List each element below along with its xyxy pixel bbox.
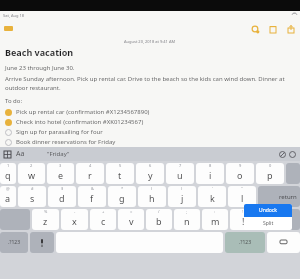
button[interactable]: / (146, 209, 172, 230)
staticText: 8 (209, 163, 212, 168)
staticText: 1 (7, 163, 10, 168)
button[interactable]: return (258, 186, 300, 207)
button[interactable]: "Friday" (47, 150, 70, 158)
button[interactable]: Share (285, 23, 296, 34)
staticText: Beach vacation (5, 46, 74, 58)
button[interactable]: Sign up for parasailing for four (5, 128, 295, 136)
button[interactable]: Table (4, 151, 11, 158)
button[interactable]: Pick up rental car (confirmation #X12345… (5, 108, 295, 116)
staticText: % (44, 209, 48, 214)
button[interactable]: Split (244, 217, 292, 230)
staticText: Sat, Aug 18 (3, 13, 25, 18)
staticText: k (210, 192, 215, 204)
staticText: h (149, 192, 155, 204)
button[interactable]: 8 (196, 163, 224, 184)
staticText: 3 (59, 163, 62, 168)
button[interactable]: & (78, 186, 106, 207)
button[interactable]: Backspace (286, 163, 300, 184)
button[interactable]: ' (198, 186, 226, 207)
staticText: 6 (149, 163, 152, 168)
button[interactable]: @ (0, 186, 16, 207)
button[interactable]: Checklist (249, 23, 260, 34)
button[interactable]: ! (230, 209, 256, 230)
staticText: j (181, 192, 184, 204)
staticText: 7 (179, 163, 182, 168)
staticText: f (90, 192, 94, 204)
staticText: $ (61, 186, 64, 191)
staticText: = (130, 209, 133, 214)
button[interactable]: - (61, 209, 88, 230)
button[interactable]: * (108, 186, 136, 207)
staticText: r (88, 169, 92, 181)
staticText: Sign up for parasailing for four (16, 128, 103, 136)
button[interactable]: 9 (226, 163, 254, 184)
button[interactable]: Shift (258, 209, 300, 230)
staticText: a (5, 192, 11, 204)
staticText: x (72, 215, 77, 227)
staticText: m (211, 215, 220, 227)
staticText: Check into hotel (confirmation #XK012345… (16, 118, 144, 126)
staticText: w (28, 169, 36, 181)
button[interactable]: 3 (47, 163, 74, 184)
staticText: q (5, 169, 11, 181)
staticText: / (158, 209, 160, 214)
staticText: e (58, 169, 64, 181)
button[interactable]: 4 (76, 163, 104, 184)
staticText: s (30, 192, 35, 204)
button[interactable]: Back to Notes (4, 26, 13, 31)
staticText: ; (186, 209, 188, 214)
button[interactable]: Undo (279, 151, 286, 158)
button[interactable]: Hide keyboard (267, 232, 300, 253)
staticText: y (148, 169, 153, 181)
staticText: t (118, 169, 122, 181)
button[interactable]: More options (289, 151, 296, 158)
staticText: Arrive Sunday afternoon. Pick up rental … (5, 75, 295, 92)
staticText: To do: (5, 97, 23, 105)
staticText: .?123 (239, 239, 252, 246)
button[interactable]: .?123 (225, 232, 265, 253)
button[interactable]: Aa (16, 149, 25, 159)
button[interactable]: 1 (0, 163, 16, 184)
button[interactable]: " (228, 186, 256, 207)
staticText: 0 (269, 163, 272, 168)
button[interactable]: ( (138, 186, 166, 207)
staticText: # (31, 186, 34, 191)
button[interactable]: = (118, 209, 144, 230)
button[interactable]: Delete (267, 23, 278, 34)
button[interactable]: Dictation (30, 232, 54, 253)
button[interactable]: $ (48, 186, 76, 207)
staticText: August 20, 2018 at 9:41 AM (124, 39, 176, 44)
staticText: & (91, 186, 94, 191)
staticText: * (121, 186, 124, 191)
button[interactable]: 6 (136, 163, 164, 184)
button[interactable]: 0 (256, 163, 284, 184)
button[interactable]: Undock (244, 204, 292, 217)
button[interactable]: # (18, 186, 46, 207)
button[interactable]: .?123 (0, 232, 28, 253)
button[interactable]: Book dinner reservations for Friday (5, 138, 295, 146)
staticText: g (119, 192, 125, 204)
button[interactable]: 5 (106, 163, 134, 184)
staticText: v (129, 215, 134, 227)
staticText: 5 (119, 163, 122, 168)
staticText: " (241, 186, 243, 191)
staticText: .?123 (8, 239, 21, 246)
staticText: p (267, 169, 273, 181)
button[interactable]: ; (174, 209, 200, 230)
staticText: ' (212, 186, 213, 191)
staticText: "Friday" (47, 150, 70, 158)
button[interactable]: : (202, 209, 228, 230)
staticText: z (43, 215, 48, 227)
button[interactable]: Check into hotel (confirmation #XK012345… (5, 118, 295, 126)
staticText: u (177, 169, 183, 181)
staticText: ) (181, 186, 183, 191)
button[interactable]: ) (168, 186, 196, 207)
staticText: n (184, 215, 190, 227)
button[interactable]: 2 (18, 163, 45, 184)
button[interactable]: % (32, 209, 59, 230)
button[interactable]: + (90, 209, 116, 230)
button[interactable]: 7 (166, 163, 194, 184)
staticText: 4 (89, 163, 92, 168)
